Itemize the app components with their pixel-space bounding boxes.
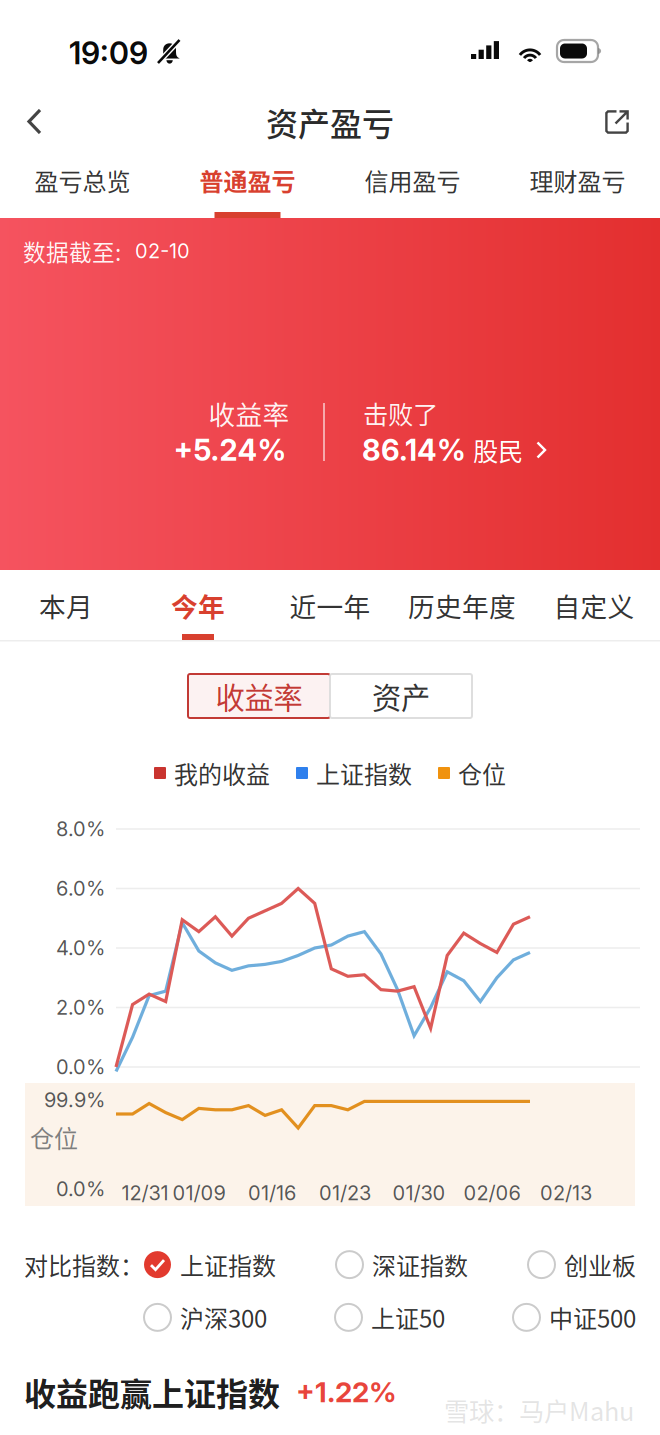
staticText: 雪球：马户Mahu <box>444 1392 634 1428</box>
staticText: 01/09 <box>172 1181 225 1205</box>
staticText: 股民 <box>473 432 523 468</box>
button[interactable]: 收益率 <box>188 674 330 718</box>
button[interactable]: 返回 <box>0 92 64 152</box>
staticText: 99.9% <box>44 1088 105 1112</box>
staticText: 6.0% <box>56 876 105 901</box>
staticText: 上证50 <box>371 1300 445 1335</box>
staticText: 0.0% <box>56 1055 105 1079</box>
staticText: 2.0% <box>56 995 105 1020</box>
button[interactable]: 信用盈亏 <box>330 152 495 218</box>
staticText: 自定义 <box>553 586 634 625</box>
staticText: 信用盈亏 <box>364 163 460 198</box>
staticText: 02/06 <box>463 1181 520 1205</box>
staticText: 近一年 <box>289 586 370 625</box>
staticText: +1.22% <box>296 1375 397 1409</box>
staticText: 资产 <box>372 675 430 717</box>
button[interactable]: 本月 <box>0 570 132 640</box>
staticText: 02/13 <box>540 1181 592 1205</box>
button[interactable]: 中证500 <box>513 1300 636 1335</box>
button[interactable]: 创业板 <box>528 1247 636 1282</box>
staticText: 我的收益 <box>174 756 270 790</box>
staticText: 盈亏总览 <box>34 163 130 198</box>
button[interactable]: 历史年度 <box>396 570 528 640</box>
button[interactable]: 自定义 <box>528 570 660 640</box>
staticText: 本月 <box>39 586 93 625</box>
button[interactable]: 今年 <box>132 570 264 640</box>
button[interactable]: 资产 <box>330 674 472 718</box>
button[interactable]: 近一年 <box>264 570 396 640</box>
button[interactable]: 深证指数 <box>336 1247 468 1282</box>
button[interactable]: 沪深300 <box>144 1300 267 1335</box>
staticText: +5.24% <box>173 432 286 468</box>
staticText: 01/30 <box>392 1181 445 1205</box>
staticText: 收益率 <box>215 675 302 717</box>
staticText: 历史年度 <box>408 586 516 625</box>
button[interactable]: 盈亏总览 <box>0 152 165 218</box>
staticText: 86.14% <box>362 432 466 468</box>
staticText: 深证指数 <box>372 1247 468 1282</box>
staticText: : <box>115 235 121 267</box>
staticText: 8.0% <box>56 817 105 841</box>
staticText: 上证指数 <box>316 756 412 790</box>
staticText: 理财盈亏 <box>529 163 625 198</box>
button[interactable]: 分享 <box>584 92 660 152</box>
staticText: 上证指数 <box>180 1247 276 1282</box>
staticText: 击败了 <box>363 395 438 431</box>
staticText: 对比指数： <box>24 1247 144 1282</box>
staticText: 沪深300 <box>180 1300 267 1335</box>
staticText: 4.0% <box>56 936 105 960</box>
staticText: 19:09 <box>69 34 148 71</box>
staticText: 0.0% <box>56 1177 105 1201</box>
staticText: 创业板 <box>564 1247 636 1282</box>
staticText: 中证500 <box>549 1300 636 1335</box>
staticText: 仓位 <box>458 756 506 790</box>
button[interactable]: 上证50 <box>335 1300 445 1335</box>
staticText: 普通盈亏 <box>199 163 295 198</box>
button[interactable]: 普通盈亏 <box>165 152 330 218</box>
staticText: 仓位 <box>30 1120 78 1154</box>
staticText: 01/23 <box>319 1181 371 1205</box>
staticText: 02-10 <box>135 239 190 263</box>
staticText: 收益率 <box>208 394 289 432</box>
staticText: 今年 <box>171 586 225 625</box>
staticText: 01/16 <box>248 1181 296 1205</box>
button[interactable]: 上证指数 <box>144 1247 276 1282</box>
staticText: 12/31 <box>121 1181 168 1205</box>
staticText: 数据截至 <box>23 235 115 267</box>
staticText: 收益跑赢上证指数 <box>24 1369 280 1415</box>
staticText: 资产盈亏 <box>266 99 394 145</box>
button[interactable]: 理财盈亏 <box>495 152 660 218</box>
